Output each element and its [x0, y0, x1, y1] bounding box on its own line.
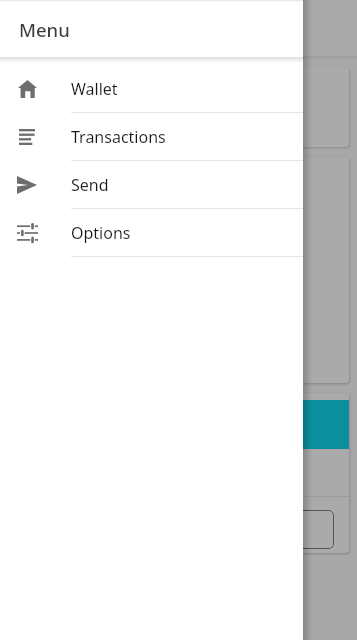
other: Options — [17, 223, 38, 243]
other: Send — [17, 176, 37, 194]
staticText: Wallet — [71, 78, 118, 100]
button[interactable]: Wallet — [0, 65, 303, 113]
button[interactable]: Transactions — [0, 113, 303, 161]
button[interactable]: Options — [0, 209, 303, 257]
staticText: Options — [71, 222, 131, 244]
button[interactable]: Send — [0, 161, 303, 209]
button[interactable]: Action — [285, 510, 334, 549]
other: Wallet — [18, 80, 37, 98]
staticText: Menu — [19, 17, 70, 42]
staticText: Send — [71, 174, 109, 196]
other: Transactions — [19, 129, 35, 145]
staticText: Transactions — [71, 126, 166, 148]
